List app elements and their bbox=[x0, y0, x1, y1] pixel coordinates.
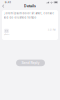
staticText: 9:41 bbox=[5, 1, 11, 4]
button[interactable]: Back bbox=[0, 3, 7, 10]
staticText: Send Reply bbox=[21, 61, 39, 65]
staticText: Lorem ipsum dolor sit amet, consec bbox=[4, 12, 55, 15]
staticText: 3:21 PM bbox=[48, 29, 56, 31]
staticText: photo bbox=[4, 33, 9, 35]
staticText: sed do eiusmod tempo bbox=[4, 16, 37, 19]
staticText: Details bbox=[24, 4, 36, 8]
button[interactable]: Send Reply bbox=[16, 60, 45, 66]
